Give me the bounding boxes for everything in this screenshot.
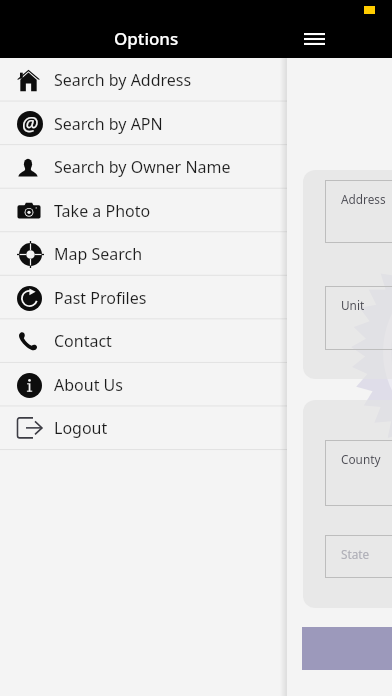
staticText: Map Search [54, 243, 143, 265]
button[interactable]: Search by Owner Name [0, 145, 287, 189]
staticText: @ [22, 111, 39, 137]
staticText: Search by Address [54, 69, 192, 91]
staticText: State [341, 546, 370, 562]
staticText: Search by APN [54, 113, 163, 135]
staticText: Take a Photo [54, 200, 151, 222]
staticText: Options [114, 27, 179, 50]
staticText: Search by Owner Name [54, 156, 231, 178]
staticText: Unit [341, 297, 365, 313]
button[interactable]: Contact [0, 319, 287, 363]
staticText: Address [341, 191, 386, 207]
button[interactable]: Search by Address [0, 58, 287, 102]
button[interactable]: Logout [0, 406, 287, 450]
button[interactable]: Menu [296, 21, 332, 57]
button[interactable]: @ [0, 102, 287, 146]
button[interactable]: About Us [0, 363, 287, 407]
staticText: Contact [54, 330, 112, 352]
staticText: Logout [54, 417, 108, 439]
staticText: County [341, 451, 381, 467]
button[interactable]: Map Search [0, 232, 287, 276]
staticText: About Us [54, 374, 123, 396]
staticText: Past Profiles [54, 287, 147, 309]
button[interactable]: Take a Photo [0, 189, 287, 233]
button[interactable]: Past Profiles [0, 276, 287, 320]
